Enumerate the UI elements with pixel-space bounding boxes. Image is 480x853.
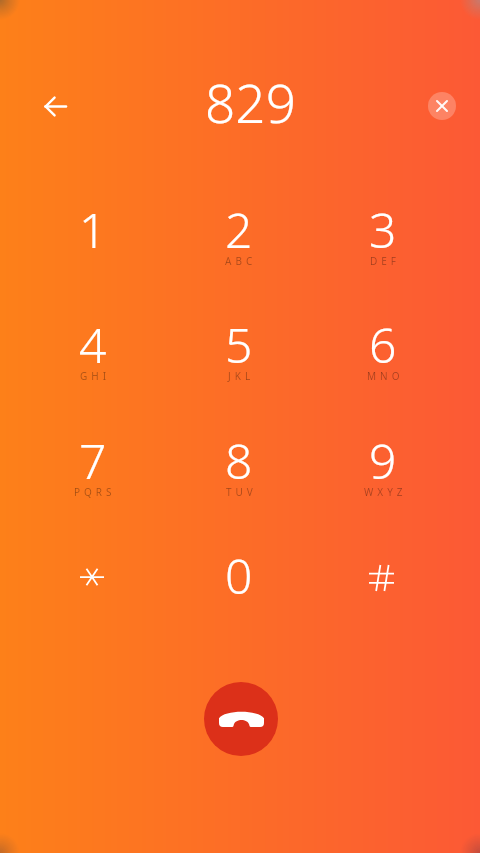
staticText: 829 [205, 66, 296, 138]
button[interactable]: 3 [335, 186, 431, 274]
staticText: ABC [225, 254, 257, 268]
staticText: 8 [225, 428, 253, 493]
button[interactable]: 1 [45, 186, 141, 274]
staticText: TUV [226, 485, 257, 499]
staticText: 2 [225, 197, 253, 262]
staticText: 6 [369, 312, 397, 377]
staticText: GHI [80, 369, 111, 383]
button[interactable]: 7 [45, 417, 141, 505]
button[interactable]: 6 [335, 301, 431, 389]
staticText: WXYZ [364, 485, 407, 499]
staticText: 9 [369, 428, 397, 493]
button[interactable]: 0 [191, 532, 287, 620]
button[interactable]: 8 [191, 417, 287, 505]
button[interactable]: * [45, 532, 141, 620]
staticText: 3 [369, 197, 397, 262]
staticText: 7 [79, 428, 107, 493]
button[interactable]: Clear number [428, 92, 456, 120]
button[interactable]: # [335, 532, 431, 620]
button[interactable]: 2 [191, 186, 287, 274]
staticText: MNO [367, 369, 404, 383]
staticText: JKL [228, 369, 255, 383]
staticText: 4 [79, 312, 107, 377]
staticText: PQRS [74, 485, 116, 499]
button[interactable]: 5 [191, 301, 287, 389]
button[interactable]: Back [33, 84, 77, 128]
staticText: DEF [370, 254, 401, 268]
staticText: 5 [225, 312, 253, 377]
button[interactable]: 4 [45, 301, 141, 389]
staticText: 0 [225, 543, 253, 608]
button[interactable]: 9 [335, 417, 431, 505]
button[interactable]: End call [204, 682, 278, 756]
staticText: 1 [79, 197, 107, 262]
